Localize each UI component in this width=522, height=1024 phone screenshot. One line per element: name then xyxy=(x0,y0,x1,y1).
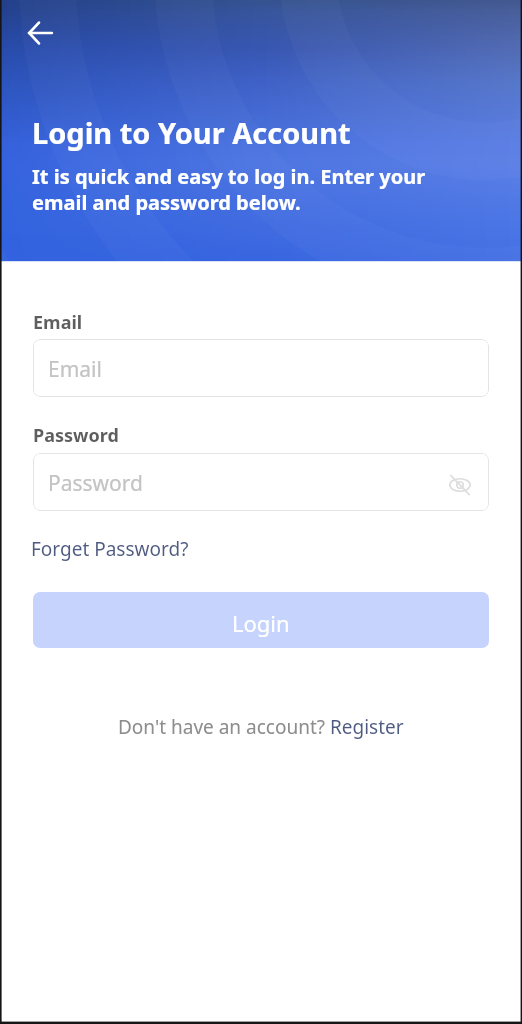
staticText: Password xyxy=(33,423,119,448)
staticText: It is quick and easy to log in. Enter yo… xyxy=(32,163,440,216)
staticText: Email xyxy=(33,310,83,335)
staticText: Don't have an account? xyxy=(118,714,330,740)
button[interactable]: Back xyxy=(17,10,63,56)
staticText: Login to Your Account xyxy=(32,113,351,152)
button[interactable]: Register xyxy=(330,714,404,740)
button[interactable]: Password xyxy=(33,453,489,511)
staticText: Password xyxy=(48,469,143,498)
staticText: Email xyxy=(48,355,102,384)
staticText: Register xyxy=(330,714,404,740)
button[interactable]: Forget Password? xyxy=(29,534,191,564)
staticText: Login xyxy=(232,608,290,638)
button[interactable]: Email xyxy=(33,339,489,397)
button[interactable]: Login xyxy=(33,592,489,648)
staticText: Forget Password? xyxy=(31,536,189,562)
button[interactable]: Toggle password visibility xyxy=(445,470,475,500)
